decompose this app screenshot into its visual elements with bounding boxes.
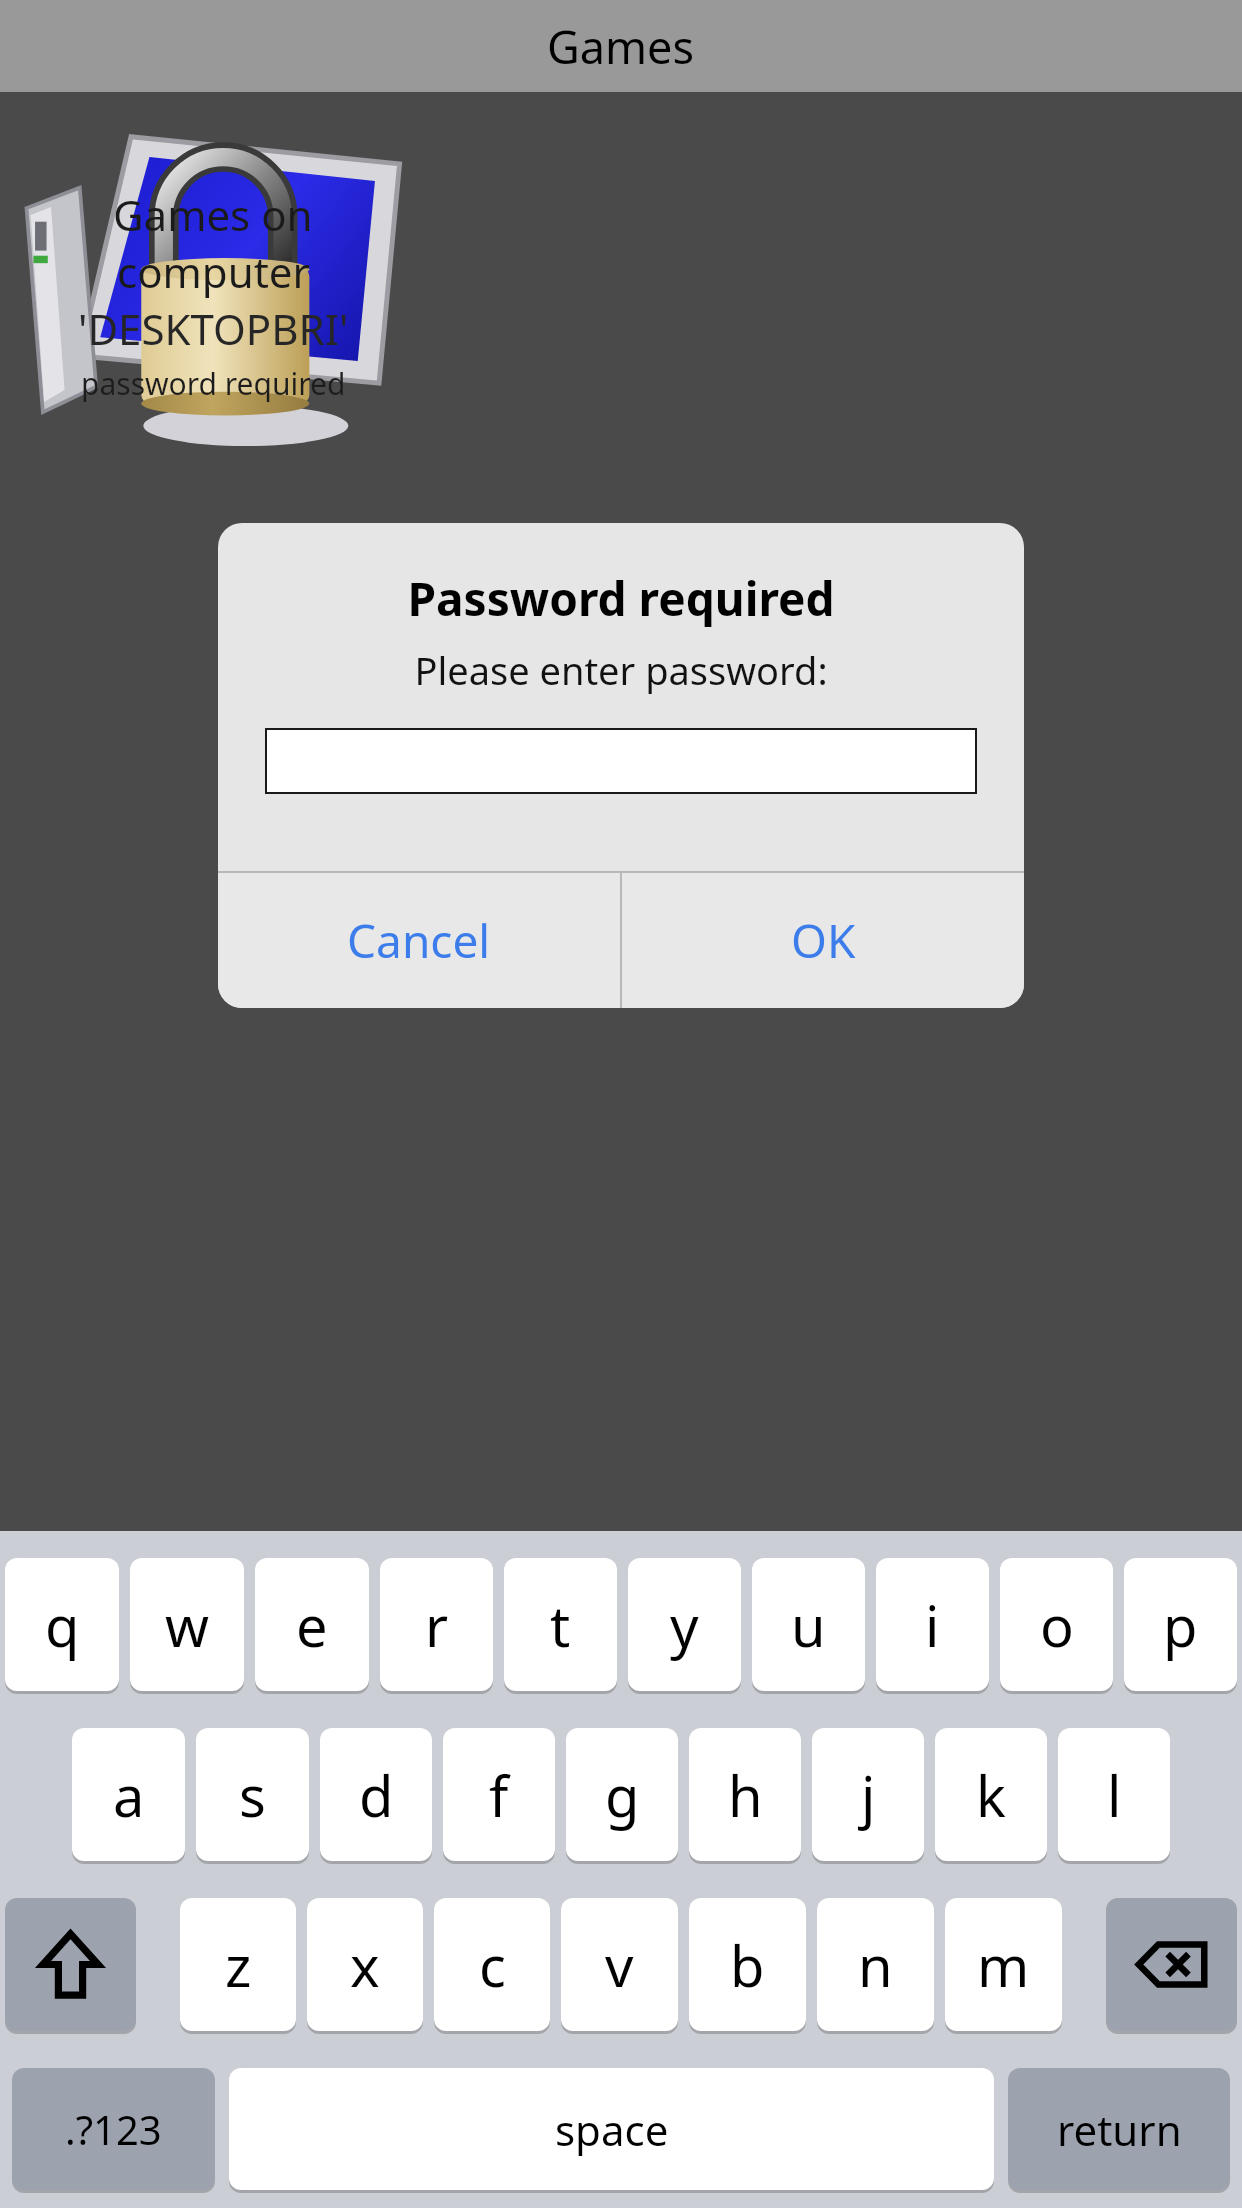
button[interactable]: i: [876, 1558, 989, 1691]
button[interactable]: c: [434, 1898, 550, 2031]
staticText: n: [858, 1927, 893, 2003]
staticText: b: [730, 1927, 765, 2003]
button[interactable]: a: [72, 1728, 185, 1861]
button[interactable]: w: [130, 1558, 244, 1691]
staticText: u: [791, 1587, 826, 1663]
button[interactable]: l: [1058, 1728, 1170, 1861]
staticText: f: [489, 1757, 509, 1833]
button[interactable]: y: [628, 1558, 741, 1691]
staticText: t: [550, 1587, 571, 1663]
staticText: c: [479, 1927, 506, 2003]
staticText: m: [977, 1927, 1030, 2003]
staticText: space: [555, 2101, 669, 2158]
button[interactable]: Shift: [5, 1898, 136, 2031]
staticText: return: [1057, 2101, 1182, 2158]
button[interactable]: g: [566, 1728, 678, 1861]
button[interactable]: s: [196, 1728, 309, 1861]
button[interactable]: k: [935, 1728, 1047, 1861]
staticText: v: [605, 1927, 634, 2003]
button[interactable]: x: [307, 1898, 423, 2031]
button[interactable]: p: [1124, 1558, 1237, 1691]
staticText: .?123: [65, 2102, 162, 2156]
staticText: k: [976, 1757, 1006, 1833]
button[interactable]: o: [1000, 1558, 1113, 1691]
button[interactable]: [265, 728, 977, 794]
staticText: j: [861, 1757, 876, 1833]
staticText: i: [925, 1587, 940, 1663]
staticText: computer: [117, 243, 310, 300]
staticText: g: [605, 1757, 640, 1833]
staticText: OK: [791, 909, 856, 972]
staticText: password required: [81, 363, 346, 404]
staticText: p: [1163, 1587, 1198, 1663]
staticText: s: [239, 1757, 266, 1833]
button[interactable]: f: [443, 1728, 555, 1861]
staticText: a: [113, 1757, 145, 1833]
button[interactable]: space: [229, 2068, 994, 2190]
staticText: Cancel: [347, 909, 491, 972]
button[interactable]: t: [504, 1558, 617, 1691]
staticText: l: [1107, 1757, 1122, 1833]
button[interactable]: q: [5, 1558, 119, 1691]
button[interactable]: d: [320, 1728, 432, 1861]
staticText: Password required: [218, 567, 1024, 630]
staticText: h: [728, 1757, 763, 1833]
staticText: Games on: [113, 186, 313, 243]
button[interactable]: z: [180, 1898, 296, 2031]
button[interactable]: b: [689, 1898, 806, 2031]
staticText: e: [296, 1587, 328, 1663]
button[interactable]: h: [689, 1728, 801, 1861]
button[interactable]: e: [255, 1558, 369, 1691]
staticText: o: [1040, 1587, 1074, 1663]
staticText: x: [350, 1927, 380, 2003]
button[interactable]: m: [945, 1898, 1062, 2031]
staticText: q: [45, 1587, 80, 1663]
staticText: y: [670, 1587, 699, 1663]
staticText: Please enter password:: [218, 644, 1024, 696]
staticText: 'DESKTOPBRI': [78, 300, 349, 357]
staticText: r: [425, 1587, 449, 1663]
button[interactable]: r: [380, 1558, 493, 1691]
button[interactable]: n: [817, 1898, 934, 2031]
button[interactable]: OK: [622, 873, 1024, 1008]
staticText: z: [225, 1927, 252, 2003]
button[interactable]: u: [752, 1558, 865, 1691]
button[interactable]: Backspace: [1106, 1898, 1237, 2031]
button[interactable]: j: [812, 1728, 924, 1861]
button[interactable]: .?123: [12, 2068, 215, 2190]
staticText: d: [359, 1757, 394, 1833]
button[interactable]: Cancel: [218, 873, 620, 1008]
button[interactable]: return: [1008, 2068, 1230, 2190]
staticText: Games: [547, 16, 695, 77]
staticText: w: [165, 1587, 210, 1663]
button[interactable]: v: [561, 1898, 678, 2031]
